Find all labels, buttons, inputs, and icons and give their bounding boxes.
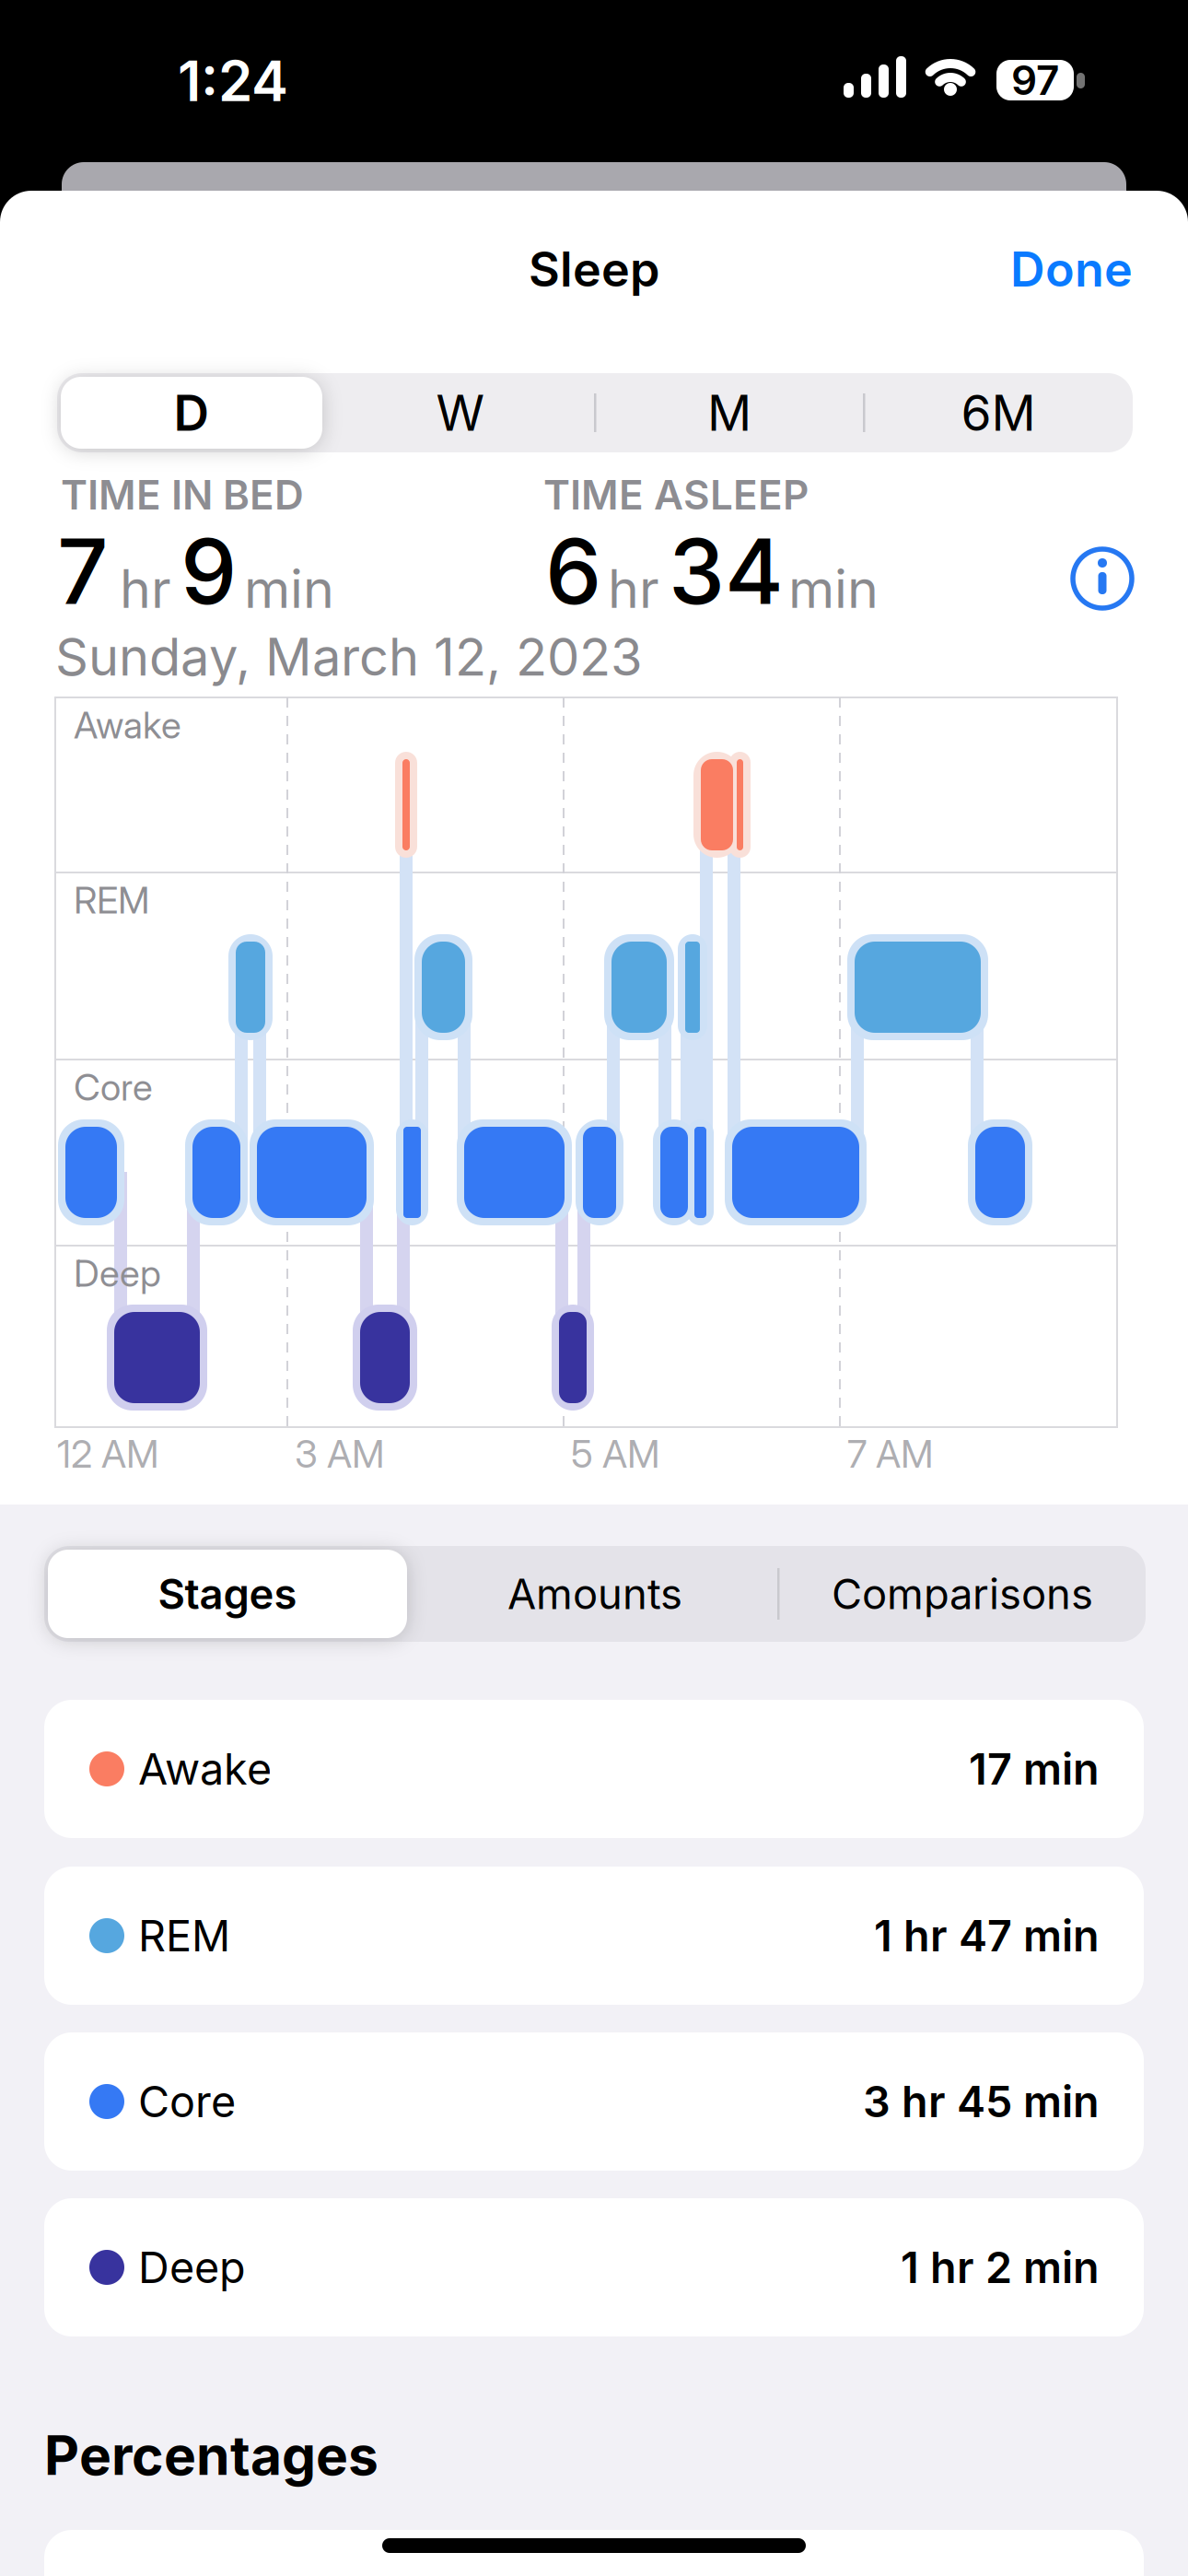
staticText: min [788,558,879,620]
staticText: Sleep [529,241,659,297]
staticText: TIME ASLEEP [543,471,809,519]
button[interactable]: Awake [0,0,1188,2576]
staticText: Percentages [44,2423,379,2487]
staticText: REM [138,1910,230,1961]
button[interactable]: M [0,0,1188,2576]
button[interactable]: Deep [0,0,1188,2576]
staticText: 12 AM [57,1431,159,1476]
button[interactable]: Done [0,0,1188,2576]
staticText: Stages [158,1569,297,1619]
staticText: 6M [961,384,1036,442]
staticText: 9 [181,518,237,624]
button[interactable]: About Sleep [0,0,1188,645]
staticText: 7 AM [847,1431,934,1476]
staticText: 3 AM [295,1431,385,1476]
button[interactable]: Stages [0,0,1188,2576]
staticText: 17 min [969,1744,1100,1794]
staticText: W [436,384,485,442]
staticText: Core [74,1065,153,1109]
staticText: Core [138,2076,236,2127]
button[interactable]: 6M [0,0,1188,2576]
button[interactable]: REM [0,0,1188,2576]
button[interactable]: Core [0,0,1188,2576]
staticText: Sunday, March 12, 2023 [55,626,643,687]
staticText: Deep [138,2242,246,2293]
staticText: 3 hr 45 min [863,2076,1100,2127]
staticText: M [707,384,751,442]
staticText: min [244,558,334,620]
staticText: 7 [57,518,109,624]
staticText: hr [120,558,171,620]
button[interactable]: D [0,0,1188,2576]
staticText: hr [608,558,659,620]
staticText: TIME IN BED [61,471,304,519]
staticText: 97 [1011,56,1059,104]
button[interactable]: Amounts [0,0,1188,2576]
staticText: REM [74,878,149,922]
button[interactable]: Comparisons [0,0,1188,2576]
staticText: 1:24 [178,48,288,114]
staticText: Awake [74,703,181,747]
staticText: Done [1010,241,1133,297]
staticText: 1 hr 2 min [901,2242,1100,2293]
staticText: 5 AM [571,1431,660,1476]
staticText: D [174,384,210,442]
staticText: Amounts [507,1569,682,1619]
button[interactable]: W [0,0,1188,2576]
staticText: 6 [545,518,601,624]
staticText: Awake [138,1744,272,1794]
staticText: Deep [74,1252,161,1295]
staticText: 1 hr 47 min [874,1910,1100,1961]
staticText: 34 [669,518,784,624]
staticText: Comparisons [832,1569,1093,1619]
